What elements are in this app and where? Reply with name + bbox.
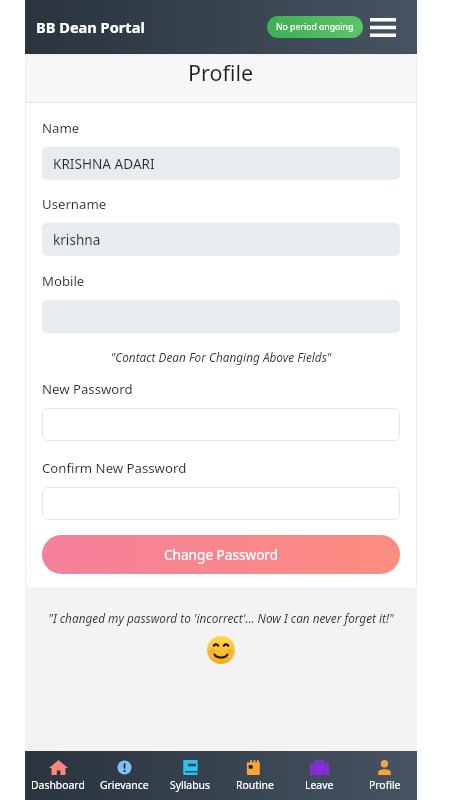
button[interactable] — [42, 487, 400, 520]
staticText: New Password — [42, 380, 133, 398]
staticText: "Contact Dean For Changing Above Fields" — [42, 349, 400, 365]
button[interactable]: Routine — [222, 760, 287, 792]
staticText: KRISHNA ADARI — [53, 154, 155, 173]
staticText: Mobile — [42, 272, 85, 290]
staticText: Syllabus — [170, 778, 210, 792]
staticText: "I changed my password to 'incorrect'...… — [25, 610, 417, 626]
staticText: Username — [42, 195, 107, 213]
staticText: Confirm New Password — [42, 459, 187, 477]
button[interactable]: Profile — [352, 760, 417, 792]
staticText: Name — [42, 119, 80, 137]
staticText: Grievance — [100, 778, 149, 792]
button[interactable] — [42, 408, 400, 441]
button[interactable]: Menu — [365, 11, 401, 43]
staticText: Profile — [369, 778, 401, 792]
button[interactable]: Grievance — [91, 760, 157, 792]
staticText: Leave — [305, 778, 334, 792]
staticText: No period ongoing — [276, 21, 354, 33]
button[interactable]: krishna — [42, 223, 400, 256]
staticText: Routine — [236, 778, 274, 792]
staticText: Dashboard — [31, 778, 85, 792]
button[interactable]: KRISHNA ADARI — [42, 147, 400, 180]
button[interactable]: Change Password — [42, 535, 400, 574]
staticText: BB Dean Portal — [36, 17, 145, 37]
button[interactable]: Leave — [287, 760, 352, 792]
button[interactable]: Syllabus — [157, 760, 222, 792]
staticText: krishna — [53, 230, 101, 249]
button[interactable]: No period ongoing — [267, 16, 363, 38]
staticText: Change Password — [164, 545, 279, 564]
button[interactable]: Dashboard — [25, 760, 91, 792]
staticText: Profile — [188, 58, 254, 87]
